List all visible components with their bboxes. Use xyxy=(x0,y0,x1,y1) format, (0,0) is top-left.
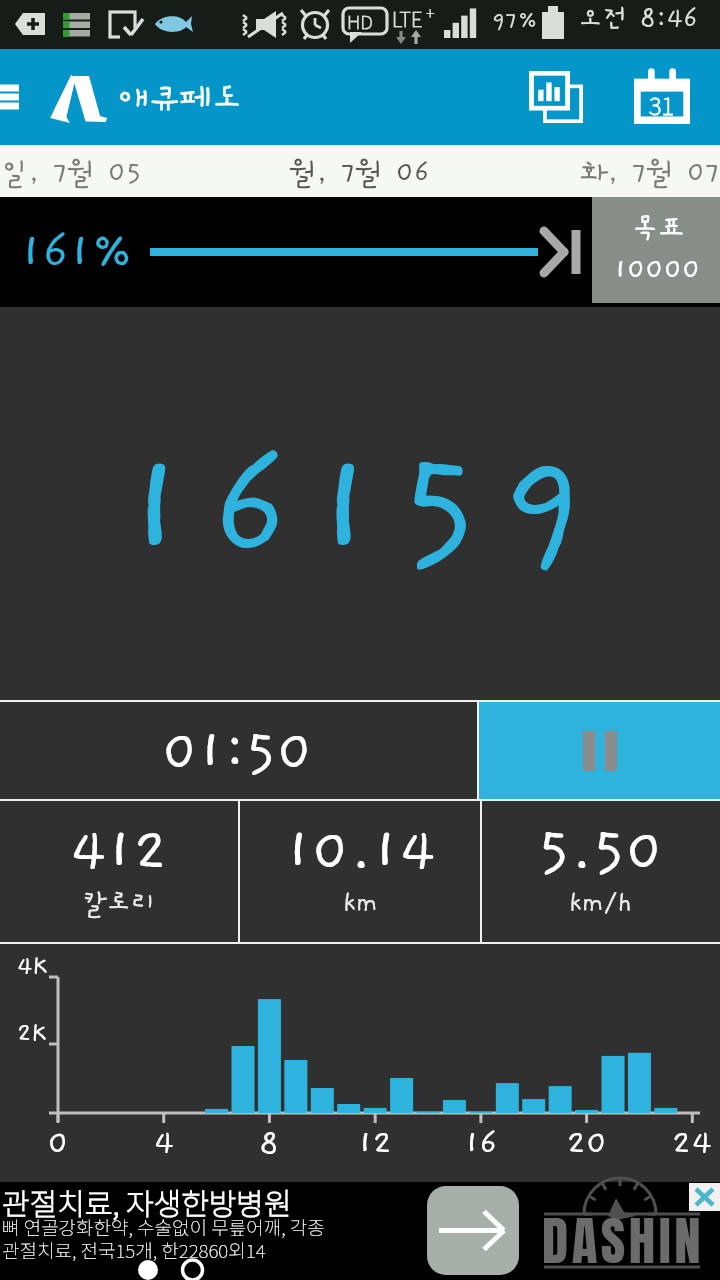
staticText: 목표 xyxy=(632,213,685,245)
button[interactable]: 5.50 xyxy=(482,801,720,942)
staticText: 5.50 xyxy=(538,818,664,884)
button[interactable]: 일, 7월 05 xyxy=(0,145,240,197)
staticText: 일, 7월 05 xyxy=(2,157,142,189)
button[interactable]: 01:50 xyxy=(0,702,477,799)
staticText: 24 xyxy=(670,1125,714,1162)
staticText: 412 xyxy=(70,818,168,884)
staticText: 4K xyxy=(17,953,48,981)
button[interactable]: Close advertisement xyxy=(689,1183,720,1211)
staticText: km xyxy=(343,888,378,918)
staticText: 화, 7월 07 xyxy=(581,157,720,189)
button[interactable]: 목표 xyxy=(592,197,720,303)
staticText: LTE xyxy=(392,4,423,33)
staticText: HD xyxy=(347,7,373,35)
staticText: 16 xyxy=(459,1125,503,1162)
button[interactable]: 10.14 xyxy=(240,801,480,942)
staticText: 10000 xyxy=(614,254,701,286)
staticText: 8 xyxy=(247,1125,291,1162)
staticText: 관절치료, 전국15개, 한22860외14 xyxy=(2,1236,266,1264)
staticText: 20 xyxy=(565,1125,609,1162)
button[interactable]: Open advertisement xyxy=(427,1186,519,1275)
staticText: 161% xyxy=(20,224,134,279)
button[interactable]: 412 xyxy=(0,801,238,942)
staticText: 오전 8:46 xyxy=(578,4,698,34)
staticText: 12 xyxy=(353,1125,397,1162)
staticText: 01:50 xyxy=(162,720,313,783)
staticText: 31 xyxy=(649,87,675,122)
button[interactable]: 관절치료, 자생한방병원 xyxy=(0,1182,720,1280)
staticText: 월, 7월 06 xyxy=(290,157,430,189)
staticText: 뼈 연골강화한약, 수술없이 무릎어깨, 각종 xyxy=(2,1213,325,1241)
staticText: km/h xyxy=(569,888,633,918)
staticText: DASHIN xyxy=(542,1201,705,1280)
staticText: 2K xyxy=(17,1020,47,1048)
button[interactable]: Menu xyxy=(0,49,26,145)
staticText: 16159 xyxy=(123,427,608,592)
button[interactable]: 화, 7월 07 xyxy=(480,145,720,197)
staticText: 0 xyxy=(36,1125,80,1162)
staticText: + xyxy=(426,1,435,24)
staticText: 칼로리 xyxy=(82,888,156,918)
staticText: 4 xyxy=(142,1125,186,1162)
staticText: 관절치료, 자생한방병원 xyxy=(2,1180,292,1223)
button[interactable]: Calendar xyxy=(622,57,702,137)
staticText: 10.14 xyxy=(285,818,436,884)
button[interactable]: 월, 7월 06 xyxy=(240,145,480,197)
button[interactable]: Statistics xyxy=(516,57,596,137)
staticText: 97% xyxy=(492,7,538,33)
button[interactable]: 161% xyxy=(0,197,592,307)
staticText: 애큐페도 xyxy=(118,80,243,118)
button[interactable]: Pause xyxy=(479,702,720,799)
